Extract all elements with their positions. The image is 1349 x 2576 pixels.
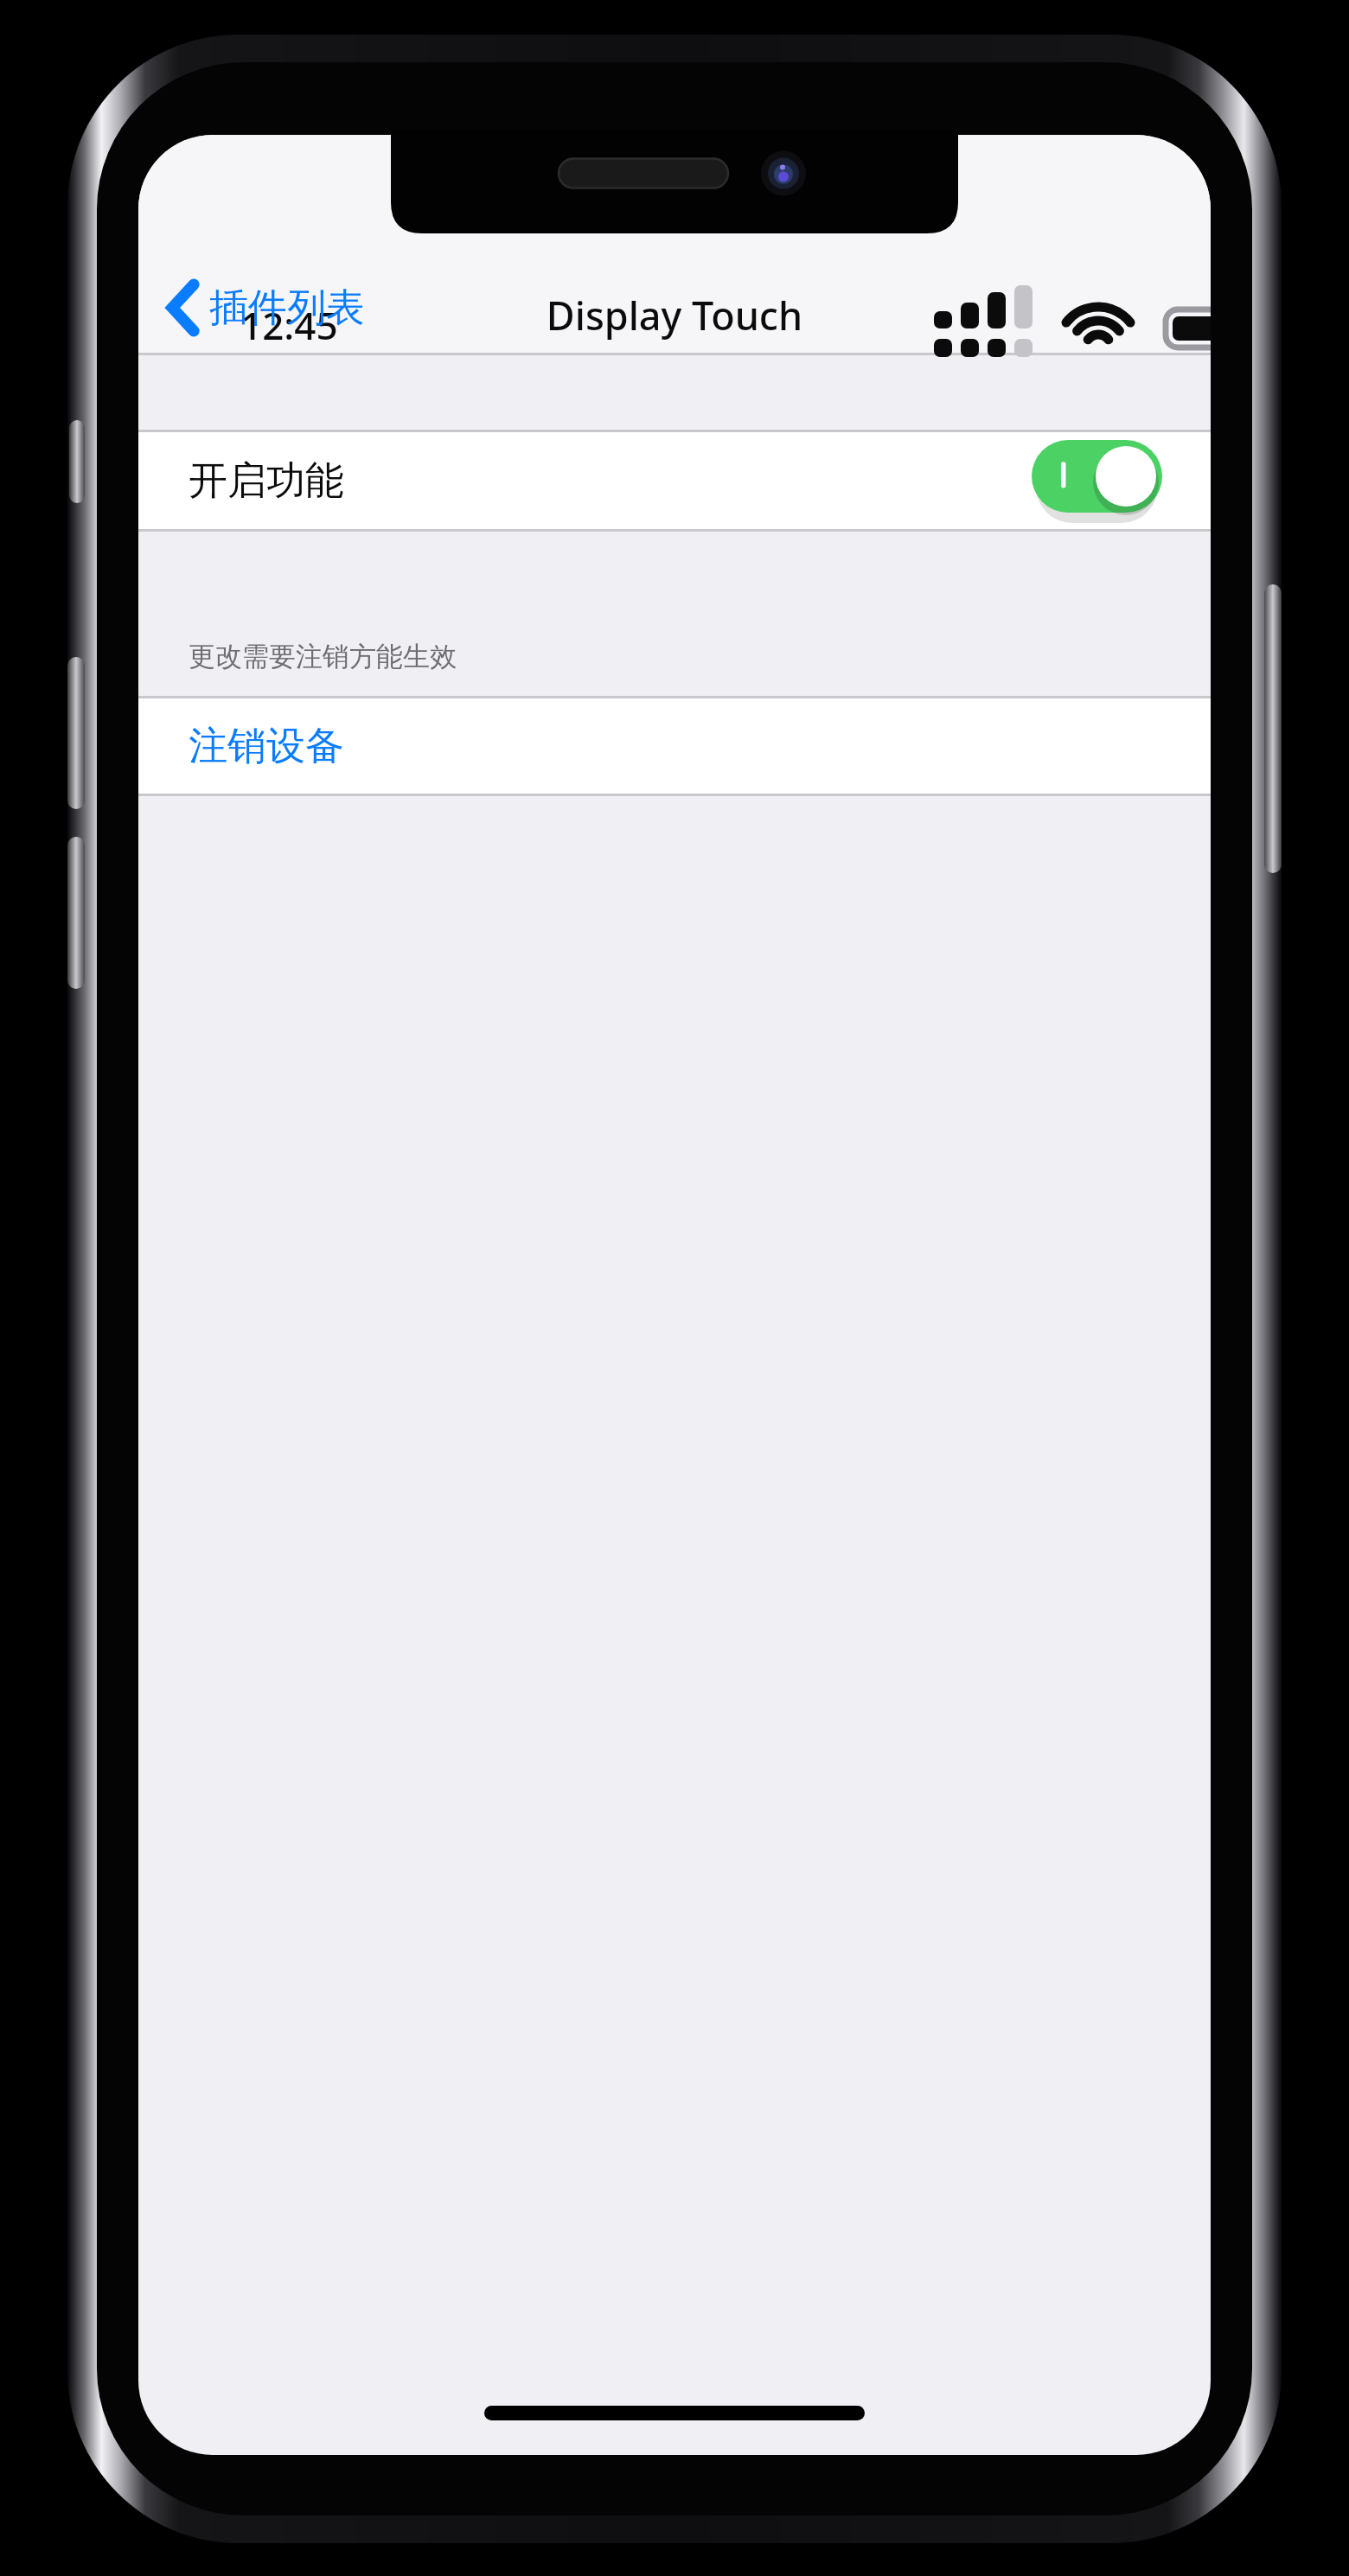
staticText: 开启功能 — [189, 456, 344, 506]
other: Home indicator — [484, 2406, 865, 2420]
button[interactable]: 开启功能 — [138, 432, 1211, 529]
staticText: 12:45 — [240, 299, 338, 351]
staticText: 注销设备 — [189, 722, 344, 771]
staticText: 插件列表 — [209, 284, 365, 333]
button[interactable]: 注销设备 — [138, 698, 1211, 794]
staticText: 更改需要注销方能生效 — [189, 640, 457, 673]
button[interactable]: 开启功能 — [1032, 440, 1162, 521]
button[interactable]: 插件列表 — [138, 263, 384, 353]
staticText: Display Touch — [138, 289, 1211, 341]
